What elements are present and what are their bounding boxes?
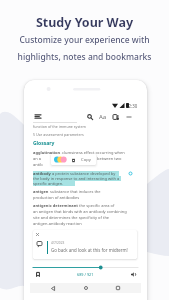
staticText: antibody	[33, 171, 51, 176]
button[interactable]: Highlight colour	[54, 156, 66, 163]
button[interactable]: Search	[84, 111, 95, 122]
staticText: substance that induces the	[49, 189, 101, 194]
staticText: the body in response to and interacting …	[33, 176, 120, 181]
staticText: the specific area of	[78, 203, 115, 208]
button[interactable]: Delete	[70, 157, 76, 163]
staticText: antigen	[33, 189, 49, 194]
button[interactable]: Home	[82, 284, 90, 292]
button[interactable]: Text size	[97, 111, 108, 122]
staticText: Customize your experience with highlight…	[0, 34, 169, 62]
staticText: 689 / 921	[77, 272, 94, 277]
staticText: function of the immune system	[33, 124, 86, 129]
staticText: 12:30	[126, 103, 138, 109]
staticText: a protein substance developed by	[51, 171, 116, 176]
staticText: Study Your Way	[0, 14, 169, 31]
staticText: site and determines the specificity of t…	[33, 215, 110, 220]
staticText: Aa	[99, 113, 107, 121]
staticText: production of antibodies	[33, 195, 80, 200]
staticText: an antigen that binds with an antibody c…	[33, 209, 127, 214]
button[interactable]: Bookmark	[33, 270, 42, 279]
staticText: specific antigen.	[33, 181, 64, 186]
button[interactable]: More	[123, 111, 134, 122]
staticText: antigenic determinant	[33, 203, 78, 208]
staticText: Go back and look at this for midterm!	[51, 247, 128, 253]
staticText: between two	[97, 156, 122, 161]
staticText: clumsiness effect occurring when	[61, 150, 125, 155]
button[interactable]: 4/7/2023	[33, 230, 137, 259]
staticText: Glossary	[33, 140, 55, 147]
staticText: agglutination	[33, 150, 61, 155]
staticText: 4/7/2023	[51, 241, 65, 245]
button[interactable]: Table of contents	[33, 112, 42, 121]
staticText: Copy	[81, 157, 91, 163]
button[interactable]: Recents	[114, 284, 122, 292]
button[interactable]: Copy	[81, 157, 91, 163]
button[interactable]: Note marker	[129, 172, 132, 175]
button[interactable]: Audio	[129, 270, 138, 279]
button[interactable]: Back	[49, 284, 57, 292]
staticText: an a	[33, 156, 41, 161]
staticText: antigen-antibody reaction	[33, 221, 82, 226]
button[interactable]: Notes	[110, 111, 121, 122]
staticText: antib	[33, 162, 43, 167]
staticText: 5 Use assessment parameters	[33, 132, 84, 137]
